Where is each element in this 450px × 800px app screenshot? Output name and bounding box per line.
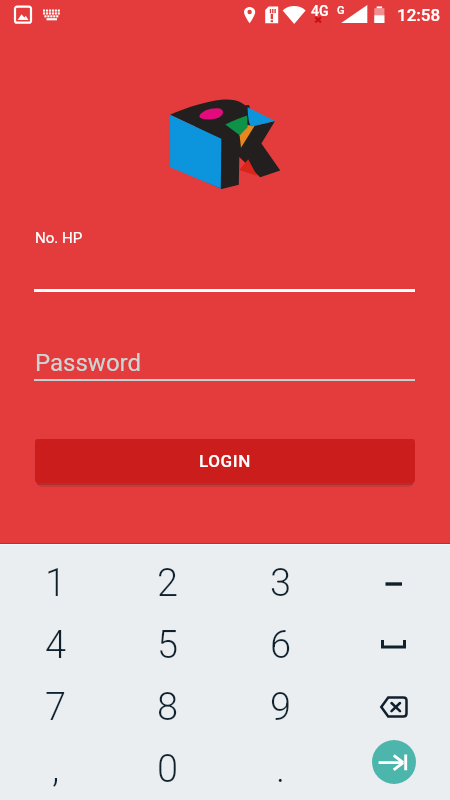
- staticText: 4G: [311, 3, 329, 19]
- button[interactable]: 1: [0, 553, 112, 614]
- button[interactable]: 5: [112, 614, 224, 676]
- staticText: 6: [270, 623, 292, 668]
- staticText: LOGIN: [199, 451, 251, 471]
- button[interactable]: LOGIN: [35, 439, 415, 483]
- button[interactable]: 4: [0, 614, 112, 676]
- other: Minus: [384, 581, 404, 587]
- button[interactable]: Minus: [337, 553, 450, 614]
- button[interactable]: 2: [112, 553, 224, 614]
- staticText: 5: [157, 623, 179, 668]
- other: Space: [381, 640, 407, 650]
- button[interactable]: ,: [0, 738, 112, 800]
- button[interactable]: Backspace: [337, 676, 450, 738]
- button[interactable]: 0: [112, 738, 224, 800]
- button[interactable]: 7: [0, 676, 112, 738]
- staticText: 12:58: [397, 5, 441, 25]
- button[interactable]: 6: [224, 614, 337, 676]
- button[interactable]: .: [224, 738, 337, 800]
- staticText: 0: [157, 747, 179, 792]
- button[interactable]: Space: [337, 614, 450, 676]
- staticText: ,: [52, 747, 60, 792]
- staticText: 1: [45, 561, 67, 606]
- staticText: 4: [45, 623, 67, 668]
- other: Backspace: [380, 696, 408, 718]
- staticText: 8: [157, 685, 179, 730]
- staticText: Password: [35, 349, 142, 377]
- staticText: G: [337, 4, 345, 17]
- staticText: 9: [270, 685, 292, 730]
- button[interactable]: Go: [337, 738, 450, 800]
- staticText: 7: [45, 685, 67, 730]
- staticText: 3: [270, 561, 292, 606]
- staticText: .: [276, 747, 286, 792]
- button[interactable]: 8: [112, 676, 224, 738]
- button[interactable]: 9: [224, 676, 337, 738]
- button[interactable]: Go: [372, 740, 416, 784]
- button[interactable]: 3: [224, 553, 337, 614]
- staticText: 2: [157, 561, 179, 606]
- staticText: No. HP: [35, 229, 83, 247]
